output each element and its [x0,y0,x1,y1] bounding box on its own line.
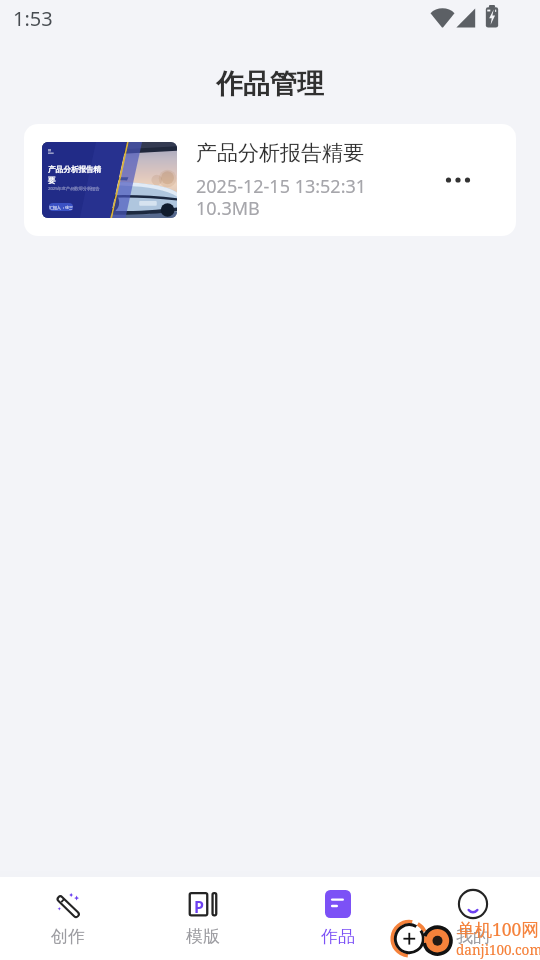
staticText: 2025-12-15 13:52:31 10.3MB [196,174,367,221]
button[interactable]: 作品 [270,877,405,960]
staticText: 汇报人：张三 [49,205,73,210]
staticText: 单机100网 [457,917,539,941]
staticText: 1:53 [13,5,53,32]
staticText: 作品 [321,926,355,947]
staticText: P [194,896,204,918]
staticText: 模版 [186,926,220,947]
staticText: 产品分析报告精要 [48,165,104,185]
staticText: 作品管理 [216,67,324,101]
staticText: 我的 [456,926,490,947]
button[interactable]: 创作 [0,877,135,960]
staticText: danji100.com [456,941,540,959]
button[interactable]: P [135,877,270,960]
button[interactable]: More options [434,156,482,204]
button[interactable]: 我的 [405,877,540,960]
staticText: 产品分析报告精要 [196,140,364,166]
staticText: 2025年度产品数据分析报告 [48,186,100,192]
button[interactable]: 产品分析报告精要 [24,124,516,236]
staticText: 创作 [51,926,85,947]
